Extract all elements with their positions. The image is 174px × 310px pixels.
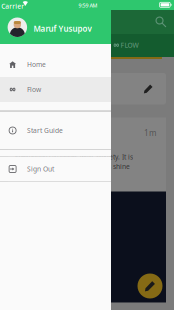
button[interactable]: Flow	[0, 77, 111, 102]
staticText: Carrier	[1, 2, 24, 11]
button[interactable]: Compose	[137, 273, 162, 298]
staticText: Start Guide	[27, 126, 63, 135]
button[interactable]: Home	[0, 52, 111, 77]
staticText: Everybody struggles with anxiety. It is	[15, 152, 133, 161]
button[interactable]: Start Guide	[0, 118, 111, 143]
staticText: Flow	[27, 85, 41, 94]
staticText: 1m	[144, 127, 156, 138]
button[interactable]: Profile photo	[8, 17, 27, 37]
button[interactable]: Search	[150, 11, 172, 33]
staticText: Maruf Yusupov	[34, 23, 92, 34]
staticText: 9:59 AM	[78, 2, 97, 9]
staticText: Sign Out	[27, 165, 54, 173]
staticText: in the darkest nights that stars shine	[15, 162, 130, 171]
button[interactable]: Sign Out	[0, 156, 111, 181]
staticText: FLOW	[121, 41, 139, 50]
button[interactable]: New post	[8, 73, 166, 104]
staticText: Home	[27, 60, 46, 69]
